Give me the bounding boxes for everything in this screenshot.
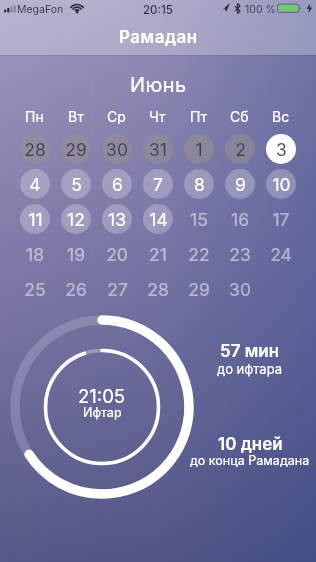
- button[interactable]: 15: [184, 204, 214, 234]
- button[interactable]: 18: [20, 239, 50, 269]
- button[interactable]: 10: [266, 169, 296, 199]
- button[interactable]: 8: [184, 169, 214, 199]
- staticText: Пн: [25, 108, 44, 124]
- staticText: 28: [147, 279, 169, 300]
- staticText: 10: [272, 174, 291, 195]
- staticText: 19: [67, 244, 85, 265]
- button[interactable]: 27: [102, 274, 132, 304]
- staticText: 30: [106, 139, 128, 160]
- staticText: 29: [188, 279, 210, 300]
- button[interactable]: 9: [225, 169, 255, 199]
- staticText: 5: [71, 174, 82, 195]
- staticText: 9: [235, 174, 246, 195]
- button[interactable]: 5: [61, 169, 91, 199]
- button[interactable]: 11: [20, 204, 50, 234]
- button[interactable]: 21: [143, 239, 173, 269]
- button[interactable]: 4: [20, 169, 50, 199]
- button[interactable]: 28: [143, 274, 173, 304]
- button[interactable]: 7: [143, 169, 173, 199]
- button[interactable]: 31: [143, 134, 173, 164]
- staticText: Июнь: [130, 73, 187, 97]
- staticText: 20: [106, 244, 128, 265]
- staticText: до конца Рамадана: [190, 453, 310, 468]
- staticText: 11: [28, 209, 43, 230]
- staticText: 31: [149, 139, 167, 160]
- staticText: 7: [153, 174, 163, 195]
- button[interactable]: 16: [225, 204, 255, 234]
- button[interactable]: 17: [266, 204, 296, 234]
- staticText: Ср: [107, 108, 126, 124]
- staticText: 12: [67, 209, 85, 230]
- button[interactable]: 28: [20, 134, 50, 164]
- button[interactable]: 20: [102, 239, 132, 269]
- staticText: 13: [108, 209, 126, 230]
- button[interactable]: 6: [102, 169, 132, 199]
- staticText: 24: [270, 244, 292, 265]
- staticText: 10 дней: [218, 434, 283, 455]
- button[interactable]: 1: [184, 134, 214, 164]
- button[interactable]: 22: [184, 239, 214, 269]
- button[interactable]: 12: [61, 204, 91, 234]
- button[interactable]: 29: [61, 134, 91, 164]
- staticText: Рамадан: [119, 27, 198, 48]
- staticText: 14: [149, 209, 168, 230]
- staticText: 28: [24, 139, 46, 160]
- button[interactable]: 25: [20, 274, 50, 304]
- button[interactable]: 13: [102, 204, 132, 234]
- staticText: 22: [188, 244, 210, 265]
- button[interactable]: 29: [184, 274, 214, 304]
- button[interactable]: 26: [61, 274, 91, 304]
- staticText: Вс: [272, 108, 290, 124]
- staticText: 20:15: [143, 3, 173, 17]
- button[interactable]: 30: [225, 274, 255, 304]
- button[interactable]: 24: [266, 239, 296, 269]
- staticText: MegaFon: [17, 3, 64, 16]
- staticText: Вт: [68, 108, 84, 124]
- staticText: 8: [194, 174, 205, 195]
- staticText: 4: [29, 174, 41, 195]
- staticText: 2: [235, 139, 246, 160]
- button[interactable]: 3: [266, 134, 296, 164]
- button[interactable]: Рамадан: [0, 20, 316, 55]
- staticText: 18: [26, 244, 44, 265]
- staticText: 27: [107, 279, 128, 300]
- button[interactable]: 2: [225, 134, 255, 164]
- staticText: 23: [229, 244, 251, 265]
- staticText: 29: [65, 139, 87, 160]
- staticText: 30: [229, 279, 251, 300]
- staticText: Пт: [190, 108, 208, 124]
- staticText: 17: [272, 209, 290, 230]
- staticText: 21:05: [78, 385, 126, 407]
- staticText: 16: [231, 209, 249, 230]
- staticText: 6: [112, 174, 123, 195]
- staticText: Ифтар: [83, 405, 122, 420]
- staticText: 57 мин: [220, 341, 280, 362]
- button[interactable]: 19: [61, 239, 91, 269]
- staticText: 15: [190, 209, 208, 230]
- staticText: 25: [24, 279, 46, 300]
- staticText: 1: [195, 139, 203, 160]
- staticText: до ифтара: [217, 361, 283, 377]
- staticText: Чт: [149, 108, 166, 124]
- button[interactable]: 23: [225, 239, 255, 269]
- staticText: Сб: [230, 108, 249, 124]
- staticText: 100 %: [245, 3, 276, 16]
- staticText: 3: [276, 139, 287, 160]
- staticText: 21: [149, 244, 167, 265]
- staticText: 26: [65, 279, 87, 300]
- button[interactable]: 14: [143, 204, 173, 234]
- button[interactable]: 30: [102, 134, 132, 164]
